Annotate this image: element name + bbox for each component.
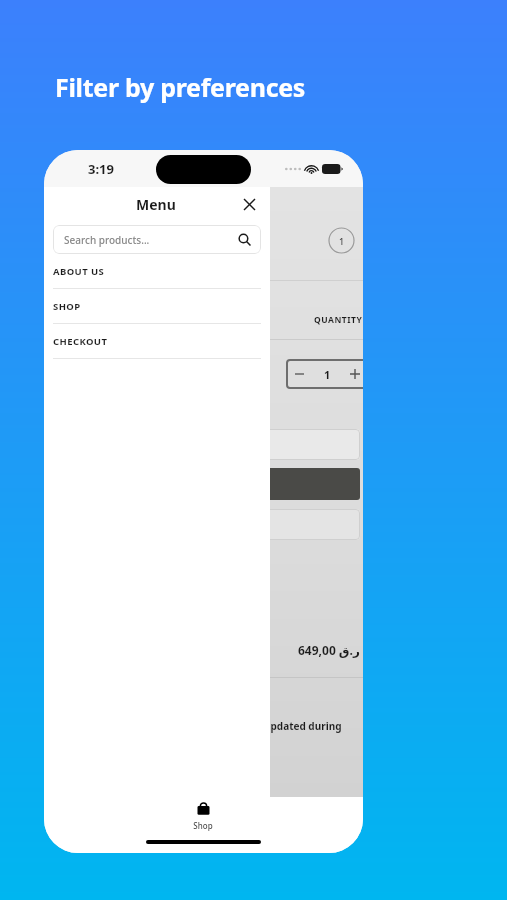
staticText: SHOP — [53, 300, 81, 313]
staticText: Menu — [136, 195, 176, 214]
button[interactable]: SHOP — [44, 289, 270, 324]
staticText: ABOUT US — [53, 265, 105, 278]
button[interactable]: Shop — [193, 801, 213, 831]
staticText: Search products... — [64, 233, 150, 247]
staticText: Shop — [193, 820, 213, 831]
button[interactable]: Step 1 — [328, 227, 355, 254]
staticText: 1 — [339, 235, 345, 247]
staticText: QUANTITY — [314, 314, 363, 326]
staticText: Filter by preferences — [55, 70, 306, 104]
button[interactable]: Add to cart — [264, 468, 360, 500]
button[interactable]: ABOUT US — [44, 254, 270, 289]
staticText: CHECKOUT — [53, 335, 108, 348]
staticText: updated during — [264, 719, 342, 733]
staticText: 649,00 ر.ق — [298, 642, 360, 658]
button[interactable]: Quantity stepper — [286, 359, 363, 389]
button[interactable]: CHECKOUT — [44, 324, 270, 359]
staticText: 3:19 — [88, 160, 114, 178]
button[interactable]: Search products... — [53, 225, 261, 254]
button[interactable]: Close menu — [236, 191, 262, 217]
button[interactable]: Buy now — [264, 509, 360, 540]
staticText: 1 — [324, 367, 331, 382]
button[interactable]: Option — [264, 429, 360, 460]
